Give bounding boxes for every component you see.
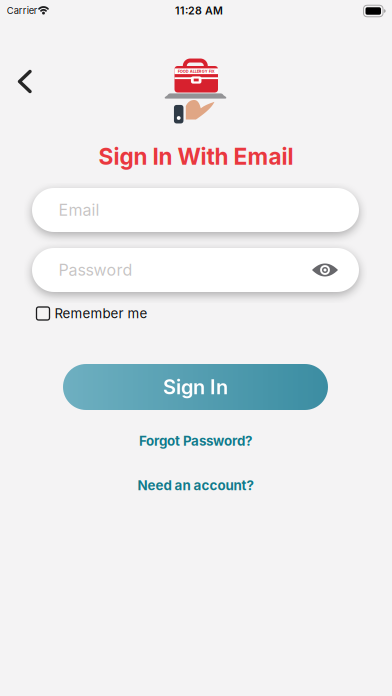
button[interactable]: Need an account?	[137, 478, 253, 493]
button[interactable]: Password	[32, 248, 359, 292]
button[interactable]: Sign In	[63, 364, 328, 410]
button[interactable]: Email	[32, 188, 359, 232]
staticText: Sign In	[163, 375, 228, 399]
staticText: Password	[58, 261, 132, 279]
staticText: Forgot Password?	[139, 433, 252, 449]
button[interactable]: Back	[9, 66, 39, 96]
staticText: Sign In With Email	[98, 143, 293, 170]
staticText: Need an account?	[137, 478, 253, 493]
button[interactable]: Remember me	[36, 306, 147, 321]
staticText: 11:28 AM	[175, 4, 223, 17]
staticText: Carrier	[7, 5, 38, 16]
button[interactable]: Show password	[312, 262, 338, 278]
button[interactable]: Forgot Password?	[139, 433, 252, 449]
staticText: Email	[58, 201, 99, 219]
staticText: FOOD ALLERGY FIX	[178, 69, 215, 74]
staticText: Remember me	[54, 306, 147, 321]
